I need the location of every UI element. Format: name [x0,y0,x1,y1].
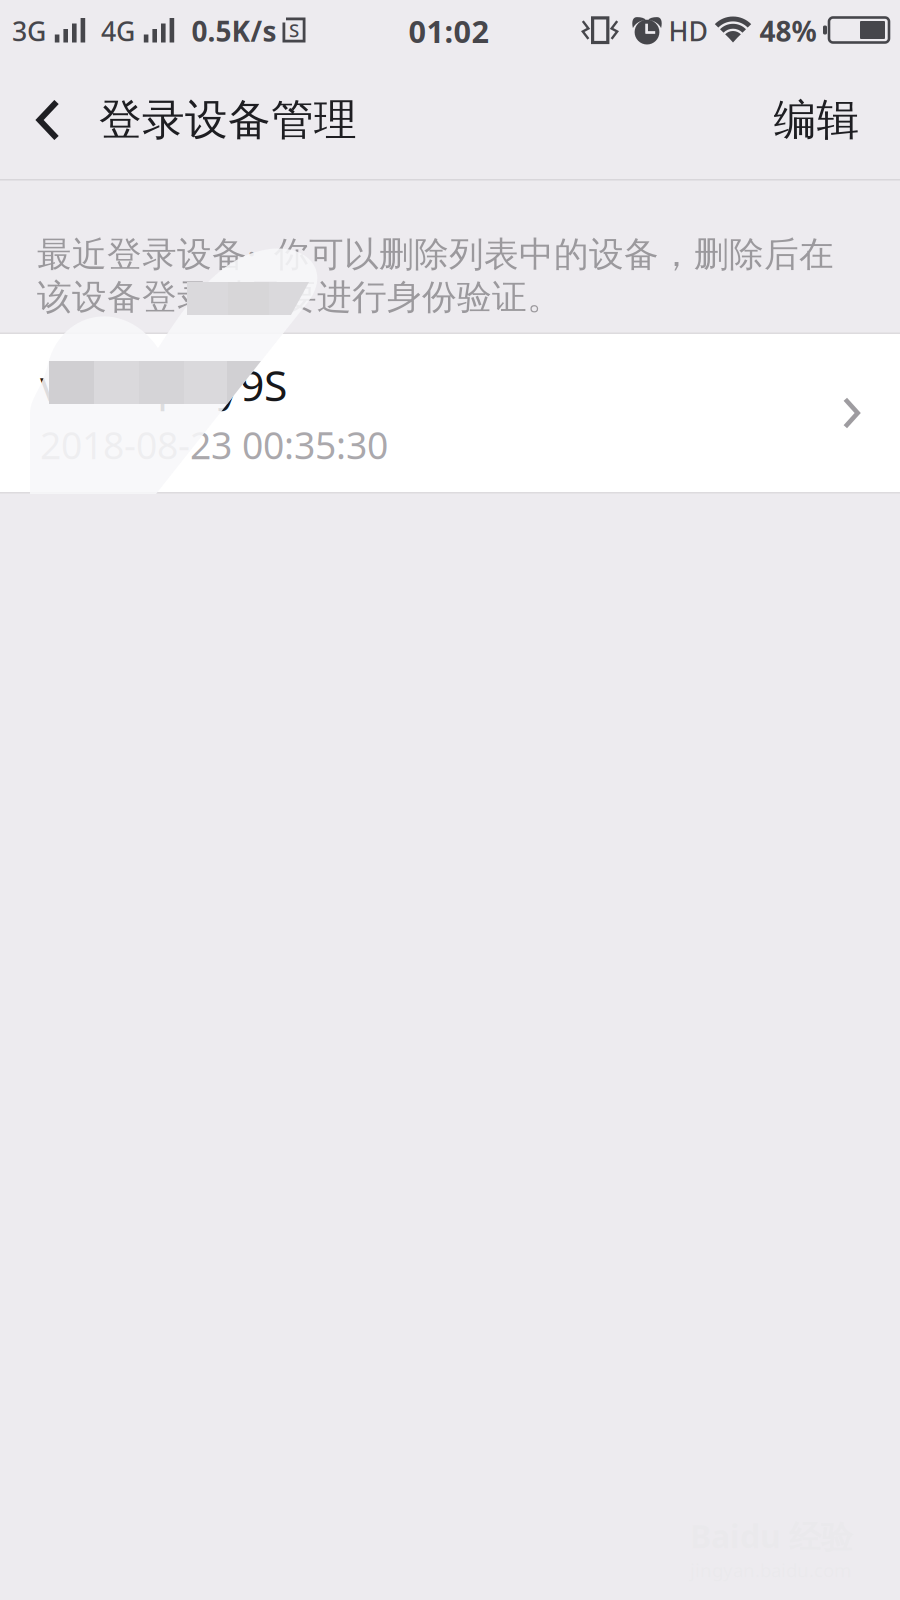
staticText: 4G [101,13,135,49]
staticText: 编辑 [773,94,859,146]
staticText: 48% [759,12,816,50]
staticText: 01:02 [408,11,489,51]
staticText: 3G [12,13,46,49]
staticText: 0.5K/s [191,12,276,50]
button[interactable]: 登录设备管理 [99,60,399,180]
button[interactable]: 返回 [0,60,96,180]
staticText: 最近登录设备· 你可以删除列表中的设备，删除后在该设备登录时需要进行身份验证。 [37,230,834,319]
staticText: vivo Xplay9S [40,356,287,413]
staticText: 登录设备管理 [99,94,357,146]
staticText: HD [668,13,707,49]
button[interactable]: vivo Xplay9S [0,334,900,492]
button[interactable]: 编辑 [754,60,879,180]
staticText: S [289,18,299,42]
staticText: 2018-08-23 00:35:30 [40,420,388,470]
